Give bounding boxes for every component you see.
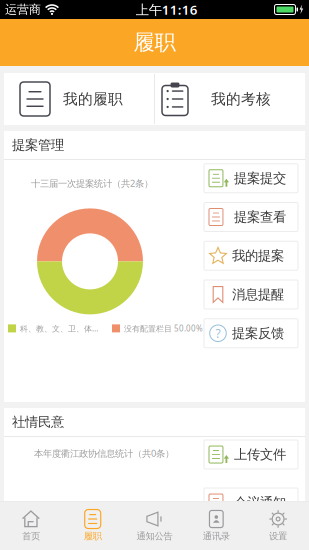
button[interactable]: 通知公告 [124,501,185,550]
button[interactable]: 首页 [0,501,62,550]
button[interactable]: 通讯录 [185,501,247,550]
staticText: 我的考核 [211,90,271,108]
staticText: 社情民意 [12,414,64,430]
button[interactable]: 上传文件 [204,440,298,469]
button[interactable]: ? [204,319,298,348]
staticText: 上午11:16 [136,1,198,18]
staticText: 消息提醒 [232,286,284,303]
button[interactable]: 我的提案 [204,241,298,270]
staticText: 设置 [269,530,287,542]
staticText: 本年度衢江政协信息统计（共0条） [34,447,174,459]
button[interactable]: 提案提交 [204,164,298,193]
staticText: 履职 [84,530,102,542]
staticText: 通讯录 [203,530,230,542]
staticText: 我的提案 [232,248,284,264]
staticText: 运营商 [5,2,41,17]
button[interactable]: 我的履职 [4,74,154,124]
staticText: 上传文件 [234,446,286,463]
staticText: 通知公告 [136,530,172,542]
staticText: 提案管理 [12,137,64,153]
staticText: 十三届一次提案统计（共2条） [31,177,153,189]
staticText: 没有配置栏目 50.00% [124,323,203,334]
staticText: 履职 [133,29,175,56]
staticText: ? [215,325,220,341]
button[interactable]: 我的考核 [155,74,305,124]
button[interactable]: 履职 [62,501,124,550]
button[interactable]: 提案查看 [204,202,298,231]
staticText: 会议通知 [234,494,286,511]
staticText: 科、教、文、卫、体… [20,323,98,334]
staticText: 提案查看 [234,209,286,225]
staticText: 提案提交 [234,170,286,186]
staticText: 提案反馈 [232,325,284,341]
staticText: 我的履职 [63,90,123,108]
button[interactable]: 消息提醒 [204,280,298,309]
button[interactable]: 设置 [247,501,309,550]
button[interactable]: 会议通知 [204,488,298,517]
staticText: 首页 [22,530,40,542]
